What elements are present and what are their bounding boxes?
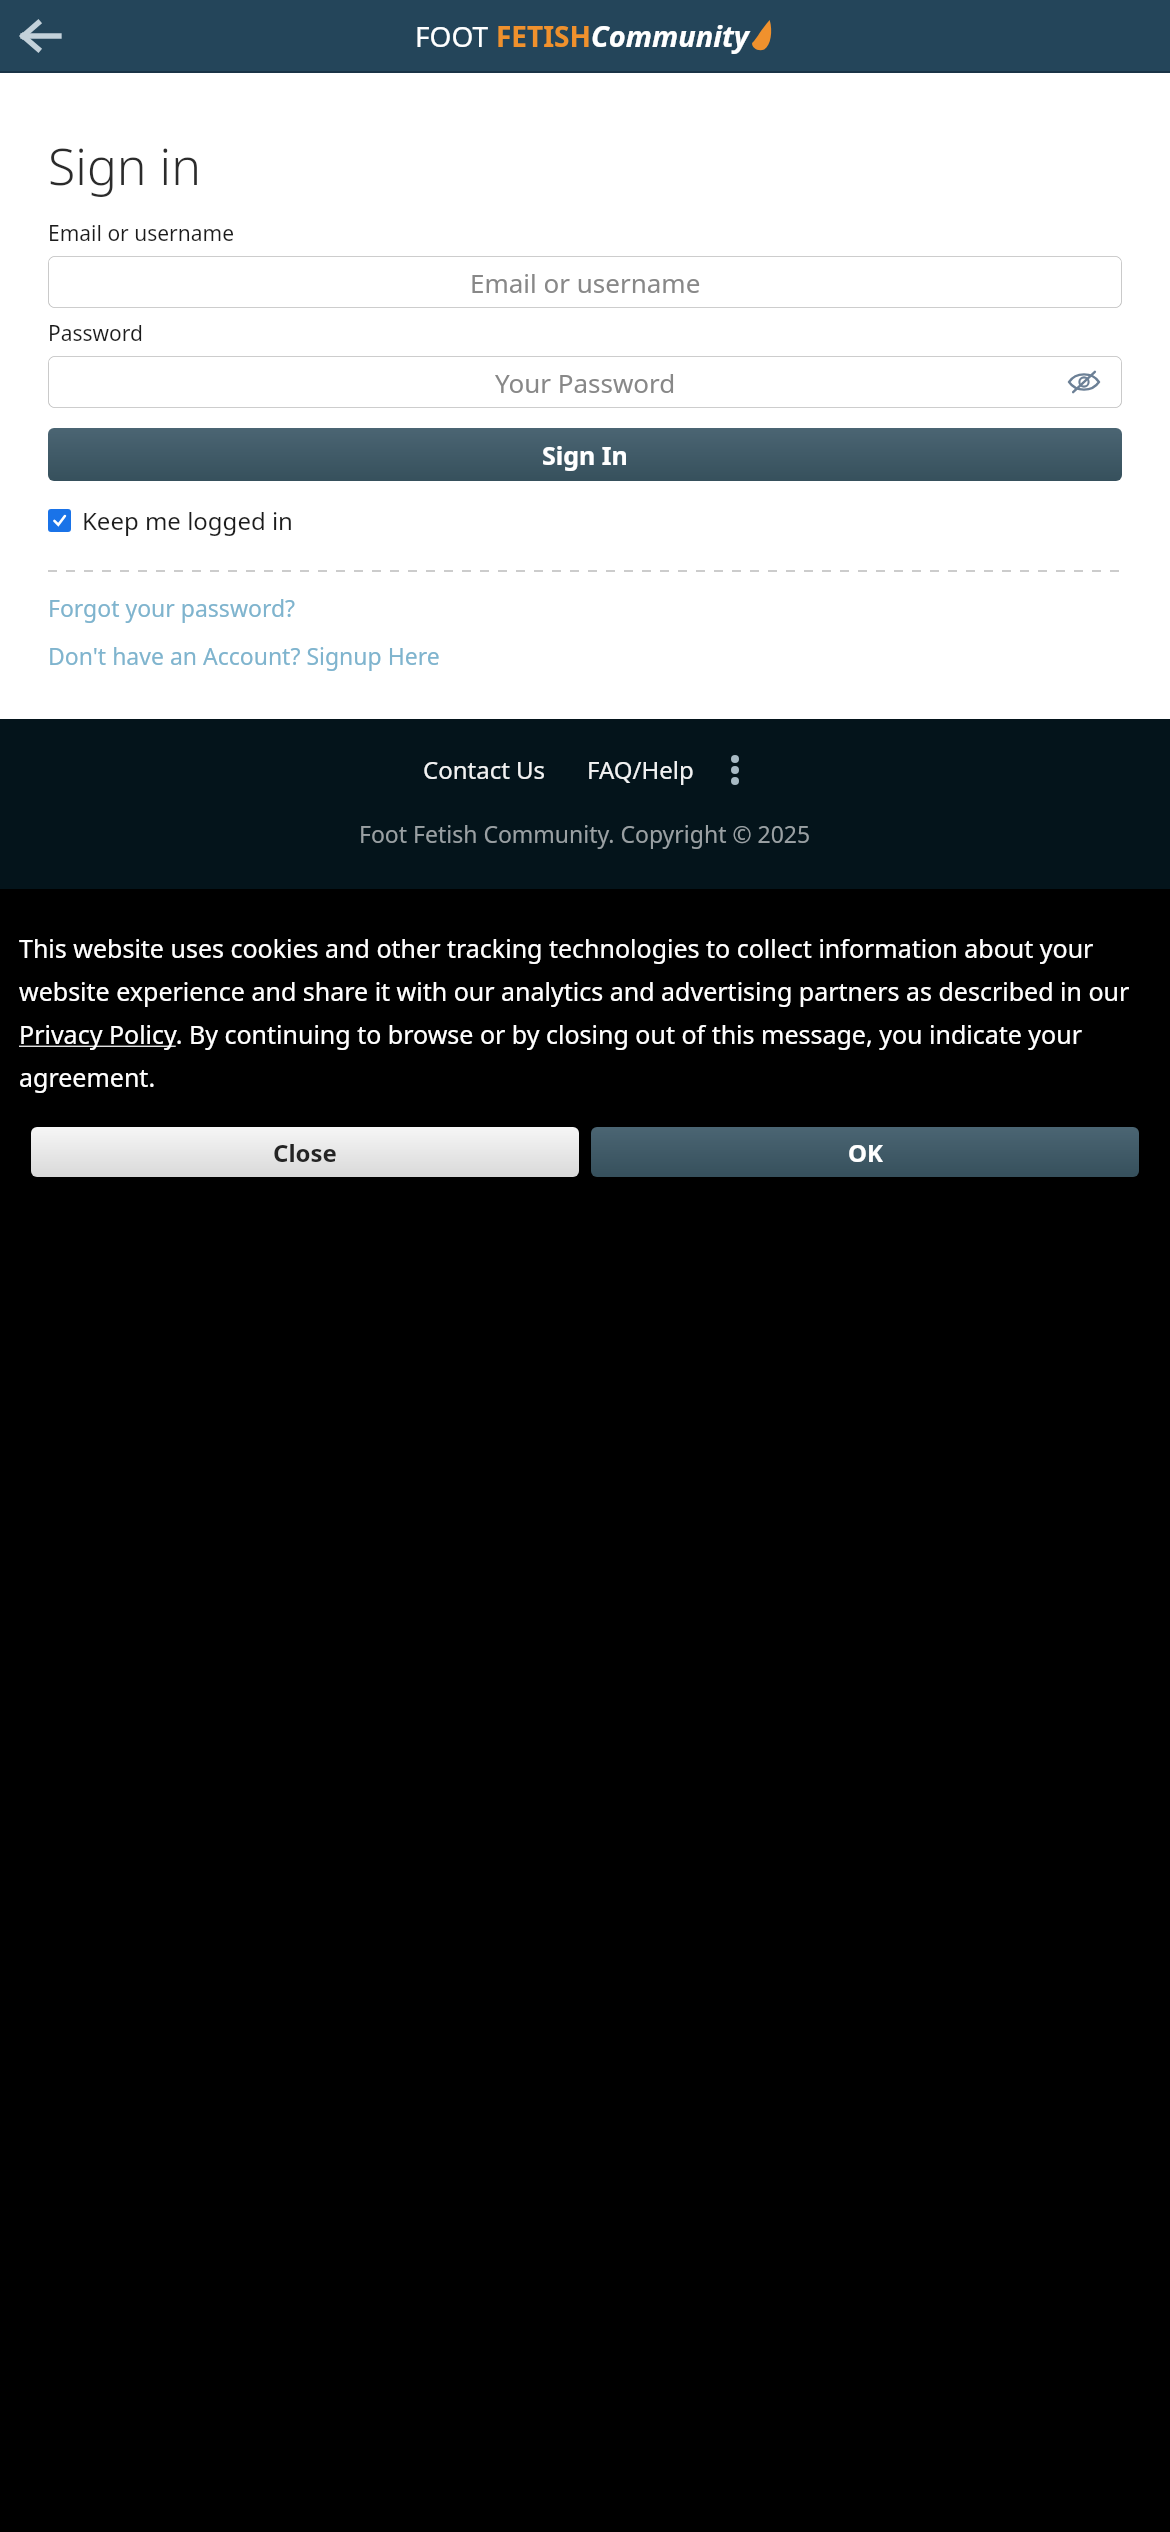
button[interactable]: Back bbox=[13, 8, 69, 64]
staticText: Sign In bbox=[542, 438, 628, 472]
button[interactable]: OK bbox=[591, 1127, 1139, 1177]
button[interactable]: Close bbox=[31, 1127, 579, 1177]
button[interactable]: Email or username bbox=[48, 256, 1122, 308]
button[interactable]: Your Password bbox=[48, 356, 1122, 408]
button[interactable]: Sign In bbox=[48, 428, 1122, 481]
staticText: This website uses cookies and other trac… bbox=[19, 931, 1151, 1094]
staticText: Forgot your password? bbox=[48, 592, 296, 623]
button[interactable]: FAQ/Help bbox=[581, 749, 700, 790]
staticText: Password bbox=[48, 319, 143, 348]
staticText: Keep me logged in bbox=[82, 504, 293, 537]
staticText: Don't have an Account? Signup Here bbox=[48, 640, 440, 671]
staticText: Contact Us bbox=[423, 753, 546, 786]
button[interactable]: Show password bbox=[1064, 362, 1104, 402]
staticText: Close bbox=[273, 1136, 337, 1169]
staticText: Sign in bbox=[48, 132, 201, 200]
staticText: FETISH bbox=[496, 17, 591, 55]
staticText: OK bbox=[848, 1136, 883, 1169]
button[interactable]: Contact Us bbox=[417, 749, 552, 790]
staticText: FAQ/Help bbox=[587, 753, 694, 786]
staticText: Email or username bbox=[470, 265, 701, 300]
staticText: FOOT bbox=[415, 17, 496, 55]
button[interactable]: Don't have an Account? Signup Here bbox=[48, 635, 1122, 676]
button[interactable]: Forgot your password? bbox=[48, 587, 1122, 628]
staticText: Email or username bbox=[48, 219, 235, 248]
staticText: Your Password bbox=[495, 365, 676, 400]
staticText: Community bbox=[591, 16, 749, 55]
staticText: Foot Fetish Community. Copyright © 2025 bbox=[359, 818, 811, 849]
button[interactable]: Keep me logged in bbox=[48, 502, 293, 539]
button[interactable]: More options bbox=[717, 752, 753, 788]
